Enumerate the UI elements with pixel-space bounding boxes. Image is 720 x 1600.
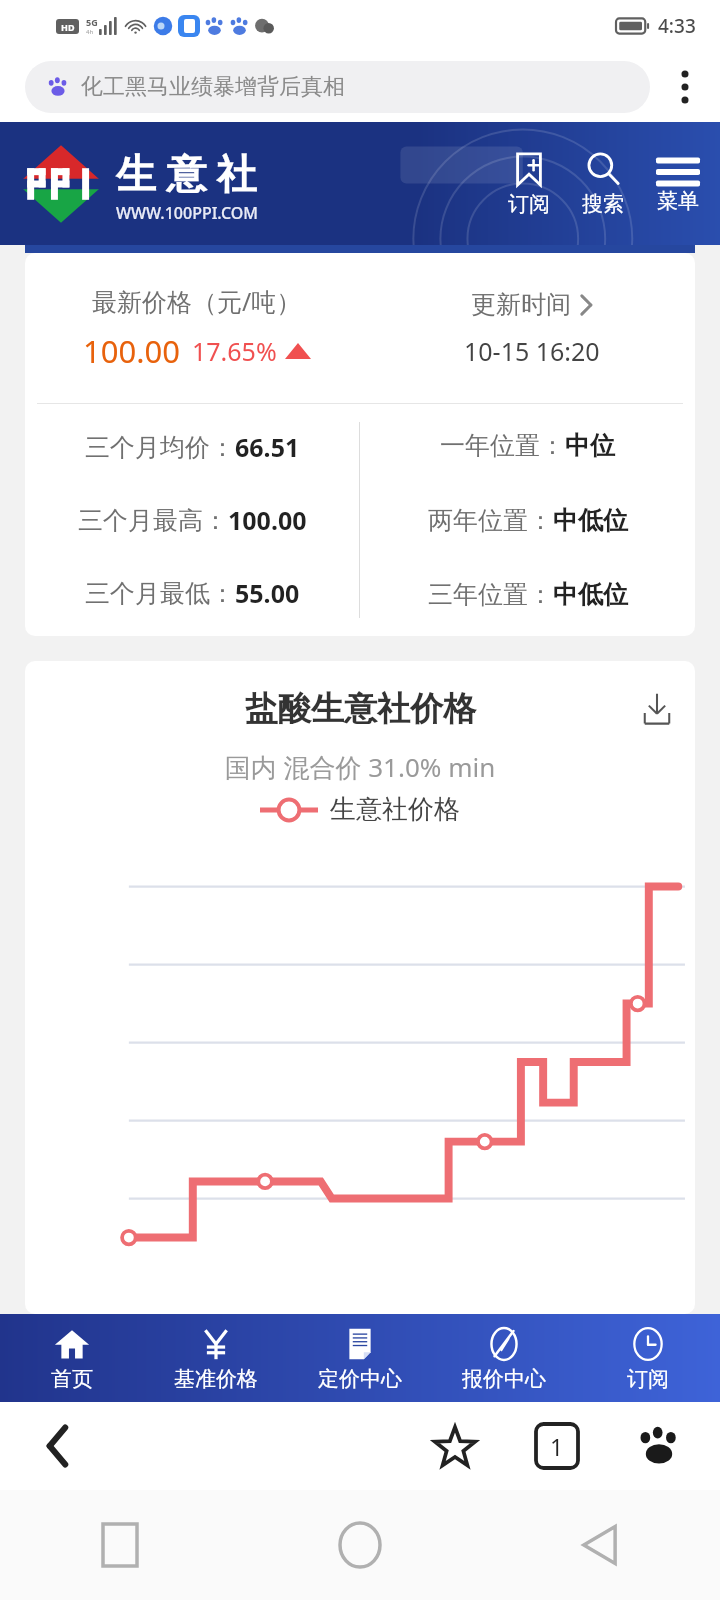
staticText: 报价中心 [462, 1366, 546, 1392]
staticText: 基准价格 [174, 1366, 258, 1392]
button[interactable]: 搜索 [578, 146, 628, 221]
button[interactable]: 报价中心 [432, 1314, 576, 1402]
staticText: 三年位置： [428, 579, 553, 610]
button[interactable]: Back [22, 1410, 94, 1482]
staticText: 国内 混合价 31.0% min [25, 749, 695, 785]
staticText: 生意社价格 [330, 793, 460, 826]
staticText: 1 [550, 1431, 564, 1462]
button[interactable]: 化工黑马业绩暴增背后真相 [25, 61, 650, 113]
staticText: 55.00 [235, 576, 300, 610]
staticText: 100.00 [228, 503, 307, 537]
staticText: 三个月均价： [85, 432, 235, 463]
staticText: 中低位 [553, 505, 628, 536]
staticText: 更新时间 [471, 289, 571, 320]
button[interactable]: 基准价格 [144, 1314, 288, 1402]
button[interactable]: 更新时间 [369, 253, 695, 403]
staticText: 最新价格（元/吨） [92, 284, 302, 318]
staticText: 一年位置： [440, 430, 565, 461]
button[interactable]: Home [240, 1490, 480, 1600]
button[interactable]: 订阅 [576, 1314, 720, 1402]
button[interactable]: 首页 [0, 1314, 144, 1402]
staticText: 4:33 [658, 13, 696, 39]
staticText: 盐酸生意社价格 [245, 688, 476, 730]
button[interactable]: 定价中心 [288, 1314, 432, 1402]
button[interactable]: 生 意 社 [20, 140, 258, 228]
staticText: 订阅 [508, 191, 550, 217]
button[interactable]: 订阅 [504, 146, 554, 221]
staticText: 菜单 [657, 188, 699, 214]
button[interactable]: Tabs: 1 [518, 1407, 596, 1485]
staticText: 中低位 [553, 579, 628, 610]
staticText: 10-15 16:20 [464, 334, 600, 368]
staticText: 三个月最高： [78, 505, 228, 536]
staticText: 17.65% [192, 334, 277, 368]
staticText: HD [61, 21, 75, 33]
button[interactable]: Bookmark [416, 1407, 494, 1485]
staticText: WWW.100PPI.COM [116, 202, 258, 224]
button[interactable]: 菜单 [652, 149, 704, 218]
staticText: 4h [86, 28, 94, 36]
staticText: 生 意 社 [116, 145, 257, 200]
staticText: 两年位置： [428, 505, 553, 536]
staticText: 化工黑马业绩暴增背后真相 [81, 73, 345, 101]
staticText: 首页 [51, 1366, 93, 1392]
staticText: 100.00 [83, 330, 180, 372]
staticText: 66.51 [235, 430, 300, 464]
staticText: 定价中心 [318, 1366, 402, 1392]
button[interactable]: 最新价格（元/吨） [25, 253, 369, 403]
staticText: 中位 [565, 430, 615, 461]
staticText: 三个月最低： [85, 578, 235, 609]
staticText: 订阅 [627, 1366, 669, 1392]
staticText: 5G [86, 16, 98, 28]
staticText: 搜索 [582, 191, 624, 217]
button[interactable]: Recent apps [0, 1490, 240, 1600]
button[interactable]: Back [480, 1490, 720, 1600]
button[interactable]: More options [650, 52, 720, 122]
button[interactable]: Baidu home [620, 1407, 698, 1485]
button[interactable]: Download chart [631, 683, 683, 735]
